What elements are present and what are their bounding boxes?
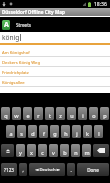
staticText: t (49, 112, 51, 119)
button[interactable]: a (6, 125, 15, 138)
staticText: ◄ Deutsch ► (35, 167, 60, 173)
button[interactable]: o (89, 107, 98, 120)
button[interactable]: v (49, 144, 58, 157)
button[interactable]: r (34, 107, 43, 120)
staticText: Königsallee (2, 80, 25, 86)
button[interactable]: x (27, 144, 36, 157)
button[interactable]: b (60, 144, 69, 157)
button[interactable]: h (61, 125, 70, 138)
button[interactable]: y (16, 144, 25, 157)
staticText: v (52, 149, 55, 156)
staticText: i (82, 112, 84, 119)
staticText: f (43, 130, 45, 137)
staticText: Am Königshof (2, 50, 30, 56)
staticText: b (63, 149, 67, 156)
button[interactable]: Königsallee (0, 77, 110, 87)
button[interactable]: f (39, 125, 48, 138)
staticText: j (76, 130, 78, 137)
staticText: o (92, 112, 96, 119)
staticText: , (22, 167, 24, 173)
staticText: 18:36 (94, 1, 107, 8)
staticText: könig (2, 33, 20, 42)
staticText: Streets (16, 22, 32, 28)
button[interactable]: Am Königshof (0, 47, 110, 57)
staticText: w (14, 112, 19, 119)
other: Shift (5, 148, 11, 154)
staticText: s (20, 130, 23, 137)
staticText: k (86, 130, 89, 137)
staticText: Deckers König Weg (2, 60, 41, 66)
staticText: ?123 (4, 167, 14, 173)
button[interactable]: d (28, 125, 37, 138)
other: Backspace (97, 148, 105, 153)
staticText: l (98, 130, 100, 137)
button[interactable]: c (38, 144, 47, 157)
button[interactable]: q (1, 107, 10, 120)
button[interactable]: e (23, 107, 32, 120)
button[interactable]: i (78, 107, 87, 120)
staticText: g (53, 130, 57, 137)
button[interactable]: , (19, 163, 27, 176)
button[interactable]: s (17, 125, 26, 138)
button[interactable]: ?123 (1, 163, 17, 176)
staticText: d (31, 130, 35, 137)
staticText: r (37, 112, 40, 119)
staticText: e (26, 112, 30, 119)
button[interactable]: l (94, 125, 103, 138)
staticText: Done (87, 167, 99, 173)
staticText: Friedrichplatz (2, 70, 29, 76)
button[interactable]: w (12, 107, 21, 120)
button[interactable]: . (67, 163, 75, 176)
staticText: u (70, 112, 74, 119)
button[interactable]: Backspace (93, 144, 109, 157)
staticText: . (70, 167, 72, 173)
staticText: c (41, 149, 44, 156)
button[interactable]: Shift (1, 144, 14, 157)
button[interactable]: t (45, 107, 54, 120)
button[interactable]: Friedrichplatz (0, 67, 110, 77)
button[interactable]: n (71, 144, 80, 157)
button[interactable]: u (67, 107, 76, 120)
staticText: q (4, 112, 8, 119)
button[interactable]: m (82, 144, 91, 157)
button[interactable]: j (72, 125, 81, 138)
button[interactable]: Deckers König Weg (0, 57, 110, 67)
staticText: m (84, 149, 90, 156)
button[interactable]: ◄ Deutsch ► (29, 163, 65, 176)
staticText: y (19, 149, 22, 156)
button[interactable]: Done (77, 163, 109, 176)
staticText: Düsseldorf Offline City Map (2, 9, 65, 15)
button[interactable]: p (100, 107, 109, 120)
staticText: n (74, 149, 78, 156)
button[interactable]: g (50, 125, 59, 138)
staticText: a (9, 130, 13, 137)
button[interactable]: z (56, 107, 65, 120)
staticText: A (4, 20, 9, 30)
staticText: h (64, 130, 68, 137)
button[interactable]: k (83, 125, 92, 138)
staticText: p (103, 112, 107, 119)
staticText: z (59, 112, 62, 119)
staticText: x (30, 149, 33, 156)
